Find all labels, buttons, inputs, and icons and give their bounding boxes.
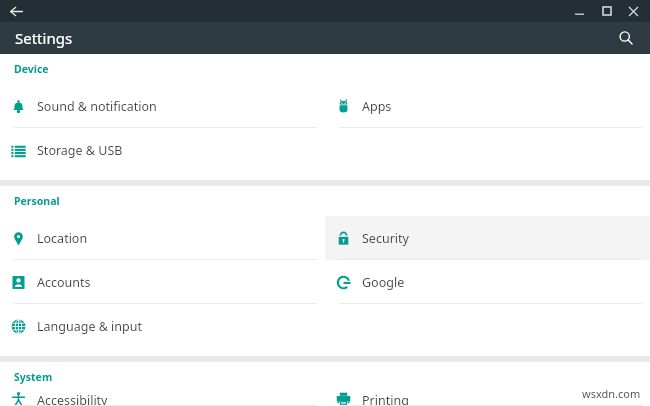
- staticText: Personal: [14, 194, 60, 208]
- button[interactable]: Minimize: [566, 0, 593, 22]
- button[interactable]: Close: [620, 0, 647, 22]
- button[interactable]: Back: [3, 0, 29, 22]
- button[interactable]: Security: [325, 216, 650, 260]
- staticText: Settings: [15, 28, 73, 48]
- staticText: Apps: [362, 98, 392, 115]
- staticText: Device: [14, 62, 49, 76]
- staticText: Google: [362, 274, 405, 291]
- button[interactable]: Accounts: [0, 260, 325, 304]
- button[interactable]: Search: [611, 23, 641, 53]
- button[interactable]: Google: [325, 260, 650, 304]
- button[interactable]: Sound & notification: [0, 84, 325, 128]
- staticText: Location: [37, 230, 88, 247]
- button[interactable]: Apps: [325, 84, 650, 128]
- staticText: Storage & USB: [37, 142, 123, 159]
- staticText: wsxdn.com: [582, 386, 641, 401]
- staticText: Language & input: [37, 318, 142, 335]
- staticText: Accessibility: [37, 392, 108, 406]
- button[interactable]: Language & input: [0, 304, 325, 348]
- button[interactable]: Storage & USB: [0, 128, 325, 172]
- staticText: System: [14, 370, 53, 384]
- button[interactable]: Accessibility: [0, 392, 325, 406]
- staticText: Security: [362, 230, 409, 247]
- button[interactable]: Maximize: [593, 0, 620, 22]
- button[interactable]: Location: [0, 216, 325, 260]
- staticText: Sound & notification: [37, 98, 157, 115]
- button[interactable]: Printing: [325, 392, 650, 406]
- staticText: Accounts: [37, 274, 91, 291]
- staticText: Printing: [362, 392, 409, 406]
